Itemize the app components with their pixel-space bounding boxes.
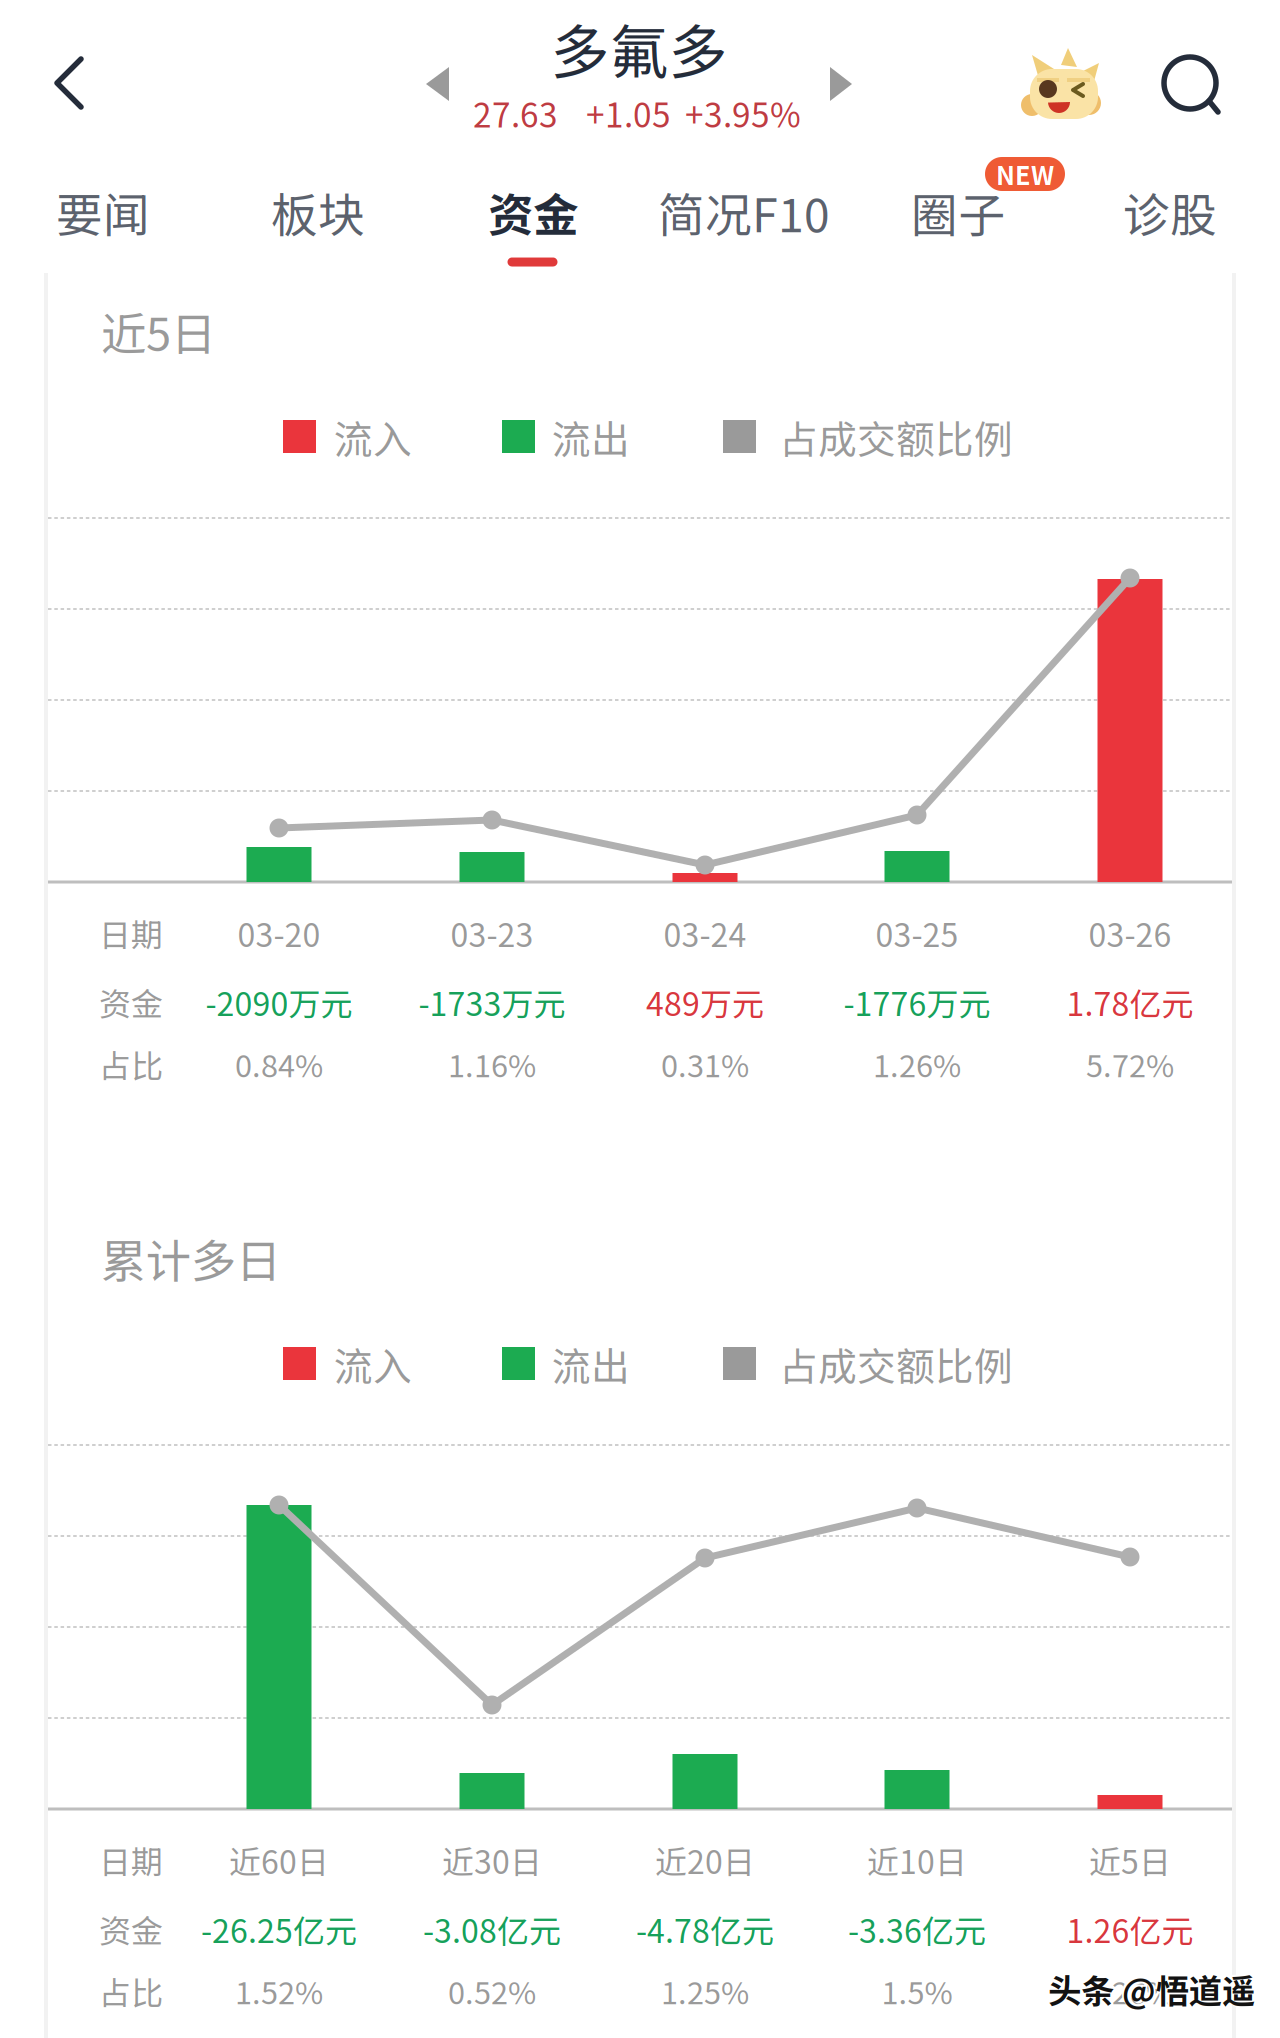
staticText: 日期 [99,910,163,956]
staticText: 0.84% [235,1042,323,1086]
staticText: 流入 [334,1336,412,1392]
button[interactable]: 诊股 [1063,157,1276,267]
staticText: 1.25% [661,1969,749,2013]
button[interactable]: 要闻 [0,157,209,267]
staticText: 03-25 [875,910,958,956]
staticText: 要闻 [56,178,150,246]
staticText: -26.25亿元 [201,1906,357,1952]
staticText: 489万元 [646,979,764,1025]
button[interactable]: Mascot [1021,43,1113,135]
staticText: 圈子 [911,178,1005,246]
staticText: 资金 [99,1906,163,1952]
staticText: -4.78亿元 [636,1906,774,1952]
staticText: 1.26% [1086,1969,1174,2013]
button[interactable]: Next stock [812,36,892,132]
staticText: 1.5% [881,1969,952,2013]
staticText: 近5日 [1089,1837,1171,1883]
button[interactable]: 资金 [426,157,639,267]
button[interactable]: 板块 [211,157,424,267]
staticText: 0.52% [448,1969,536,2013]
button[interactable]: 圈子 [851,157,1064,267]
staticText: 板块 [271,178,365,246]
staticText: 头条 @悟道遥 [1048,1965,1255,2013]
staticText: 占成交额比例 [779,409,1013,465]
staticText: 流出 [552,1336,630,1392]
staticText: 占比 [99,1968,163,2014]
staticText: 1.26亿元 [1066,1906,1193,1952]
button[interactable]: 简况F10 [637,157,850,267]
staticText: 资金 [488,179,578,245]
staticText: 5.72% [1086,1042,1174,1086]
staticText: 流出 [552,409,630,465]
staticText: 1.78亿元 [1066,979,1193,1025]
staticText: 近20日 [655,1837,755,1883]
staticText: 03-20 [237,910,320,956]
button[interactable]: Search [1130,12,1250,152]
staticText: 0.31% [661,1042,749,1086]
staticText: -2090万元 [205,979,352,1025]
button[interactable]: Back [0,13,112,153]
staticText: -3.08亿元 [423,1906,561,1952]
staticText: -1733万元 [418,979,565,1025]
staticText: NEW [996,156,1054,192]
button[interactable]: Previous stock [412,36,492,132]
staticText: 1.16% [448,1042,536,1086]
staticText: 诊股 [1123,178,1217,246]
staticText: 资金 [99,979,163,1025]
staticText: 03-23 [450,910,533,956]
staticText: 头条 @悟道遥 [1050,1967,1257,2015]
staticText: 头条 @悟道遥 [1046,1963,1253,2011]
staticText: 27.63 +1.05 +3.95% [473,89,801,137]
staticText: -3.36亿元 [848,1906,986,1952]
staticText: 1.26% [873,1042,961,1086]
staticText: 03-24 [663,910,746,956]
staticText: 流入 [334,409,412,465]
staticText: 近5日 [101,298,216,364]
staticText: 03-26 [1088,910,1171,956]
staticText: -1776万元 [843,979,990,1025]
staticText: 占成交额比例 [779,1336,1013,1392]
staticText: 多氟多 [550,5,727,90]
staticText: 近10日 [867,1837,967,1883]
staticText: 1.52% [235,1969,323,2013]
staticText: 占比 [99,1041,163,1087]
staticText: 近60日 [229,1837,329,1883]
button[interactable]: 多氟多 [469,0,809,130]
staticText: 近30日 [442,1837,542,1883]
staticText: 日期 [99,1837,163,1883]
staticText: 累计多日 [101,1225,281,1291]
staticText: 简况F10 [658,178,830,246]
